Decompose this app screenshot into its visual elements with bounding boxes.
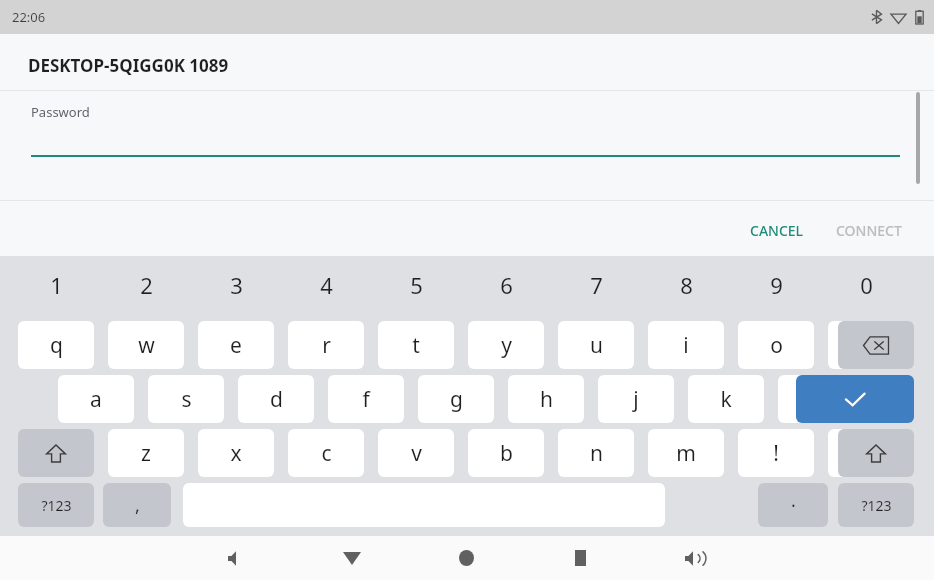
staticText: y bbox=[501, 331, 512, 360]
button[interactable]: q bbox=[18, 321, 94, 369]
staticText: s bbox=[181, 385, 192, 414]
staticText: 0 bbox=[860, 270, 873, 300]
staticText: f bbox=[362, 385, 370, 414]
button[interactable]: e bbox=[198, 321, 274, 369]
staticText: e bbox=[230, 331, 242, 360]
button[interactable]: 2 bbox=[108, 262, 184, 308]
staticText: 7 bbox=[590, 270, 603, 300]
button[interactable]: k bbox=[688, 375, 764, 423]
staticText: x bbox=[230, 439, 242, 468]
staticText: 4 bbox=[320, 270, 333, 300]
staticText: CANCEL bbox=[750, 221, 804, 240]
staticText: m bbox=[676, 439, 696, 468]
button[interactable]: ! bbox=[738, 429, 814, 477]
staticText: 22:06 bbox=[12, 8, 46, 26]
staticText: 5 bbox=[410, 270, 423, 300]
button[interactable]: CONNECT bbox=[826, 214, 912, 247]
button[interactable]: 7 bbox=[558, 262, 634, 308]
staticText: ?123 bbox=[41, 496, 72, 515]
button[interactable]: ?123 bbox=[18, 483, 94, 527]
staticText: q bbox=[50, 331, 63, 360]
button[interactable]: p bbox=[828, 321, 904, 369]
staticText: n bbox=[590, 439, 603, 468]
staticText: 2 bbox=[140, 270, 153, 300]
button[interactable]: c bbox=[288, 429, 364, 477]
button[interactable]: n bbox=[558, 429, 634, 477]
button[interactable]: l bbox=[778, 375, 854, 423]
staticText: p bbox=[860, 331, 873, 360]
staticText: b bbox=[500, 439, 513, 468]
staticText: , bbox=[135, 493, 140, 518]
button[interactable]: y bbox=[468, 321, 544, 369]
staticText: z bbox=[141, 439, 151, 468]
button[interactable]: a bbox=[58, 375, 134, 423]
button[interactable]: 0 bbox=[828, 262, 904, 308]
button[interactable]: 9 bbox=[738, 262, 814, 308]
staticText: h bbox=[540, 385, 553, 414]
button[interactable]: ? bbox=[828, 429, 904, 477]
button[interactable]: 3 bbox=[198, 262, 274, 308]
button[interactable]: Shift bbox=[18, 429, 94, 477]
staticText: · bbox=[791, 493, 796, 518]
button[interactable]: , bbox=[103, 483, 171, 527]
staticText: Password bbox=[31, 103, 90, 121]
staticText: 1 bbox=[50, 270, 63, 300]
staticText: g bbox=[450, 385, 463, 414]
staticText: ! bbox=[773, 439, 779, 468]
staticText: o bbox=[770, 331, 783, 360]
button[interactable]: Volume up bbox=[671, 536, 717, 580]
staticText: ? bbox=[861, 439, 871, 468]
button[interactable]: · bbox=[758, 483, 828, 527]
button[interactable]: CANCEL bbox=[740, 214, 814, 247]
button[interactable]: r bbox=[288, 321, 364, 369]
button[interactable]: m bbox=[648, 429, 724, 477]
button[interactable]: Enter bbox=[796, 375, 914, 423]
button[interactable]: h bbox=[508, 375, 584, 423]
button[interactable]: j bbox=[598, 375, 674, 423]
button[interactable]: Shift bbox=[838, 429, 914, 477]
staticText: k bbox=[720, 385, 732, 414]
button[interactable]: u bbox=[558, 321, 634, 369]
button[interactable]: g bbox=[418, 375, 494, 423]
button[interactable]: i bbox=[648, 321, 724, 369]
staticText: DESKTOP-5QIGG0K 1089 bbox=[28, 54, 229, 77]
staticText: a bbox=[90, 385, 102, 414]
button[interactable]: v bbox=[378, 429, 454, 477]
button[interactable]: 6 bbox=[468, 262, 544, 308]
staticText: j bbox=[633, 385, 639, 414]
button[interactable]: 5 bbox=[378, 262, 454, 308]
staticText: c bbox=[321, 439, 332, 468]
staticText: d bbox=[270, 385, 283, 414]
staticText: 3 bbox=[230, 270, 243, 300]
button[interactable]: 8 bbox=[648, 262, 724, 308]
button[interactable]: w bbox=[108, 321, 184, 369]
staticText: v bbox=[411, 439, 422, 468]
button[interactable]: Recent apps bbox=[557, 536, 603, 580]
button[interactable]: o bbox=[738, 321, 814, 369]
staticText: ?123 bbox=[861, 496, 892, 515]
button[interactable]: s bbox=[148, 375, 224, 423]
staticText: 9 bbox=[770, 270, 783, 300]
button[interactable]: Volume down bbox=[214, 536, 260, 580]
button[interactable]: d bbox=[238, 375, 314, 423]
button[interactable] bbox=[31, 100, 900, 158]
button[interactable]: 1 bbox=[18, 262, 94, 308]
button[interactable]: 4 bbox=[288, 262, 364, 308]
button[interactable]: b bbox=[468, 429, 544, 477]
staticText: w bbox=[138, 331, 155, 360]
staticText: 8 bbox=[680, 270, 693, 300]
staticText: u bbox=[590, 331, 603, 360]
button[interactable]: Home bbox=[443, 536, 489, 580]
staticText: 6 bbox=[500, 270, 513, 300]
button[interactable]: z bbox=[108, 429, 184, 477]
staticText: i bbox=[683, 331, 689, 360]
button[interactable]: Backspace bbox=[838, 321, 914, 369]
button[interactable]: t bbox=[378, 321, 454, 369]
button[interactable]: x bbox=[198, 429, 274, 477]
button[interactable]: f bbox=[328, 375, 404, 423]
button[interactable]: ?123 bbox=[838, 483, 914, 527]
button[interactable]: Back bbox=[329, 536, 375, 580]
staticText: t bbox=[412, 331, 420, 360]
